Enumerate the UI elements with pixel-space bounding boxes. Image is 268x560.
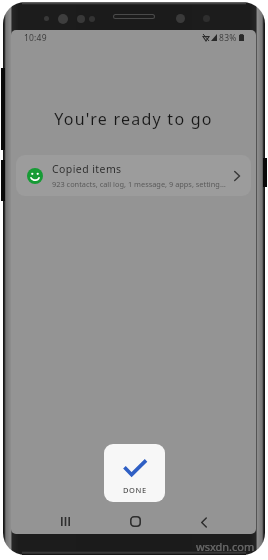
- staticText: Copied items: [52, 162, 122, 176]
- staticText: 923 contacts, call log, 1 message, 9 app…: [52, 179, 226, 189]
- staticText: 10:49: [24, 32, 47, 44]
- button[interactable]: Home: [124, 510, 146, 532]
- staticText: 83%: [219, 32, 237, 44]
- staticText: wsxdn.com: [196, 539, 255, 554]
- staticText: You're ready to go: [11, 108, 256, 130]
- button[interactable]: Back: [193, 510, 215, 532]
- staticText: DONE: [123, 485, 147, 495]
- button[interactable]: Copied items: [16, 155, 251, 196]
- button[interactable]: DONE: [104, 444, 165, 502]
- button[interactable]: Recent apps: [54, 510, 76, 532]
